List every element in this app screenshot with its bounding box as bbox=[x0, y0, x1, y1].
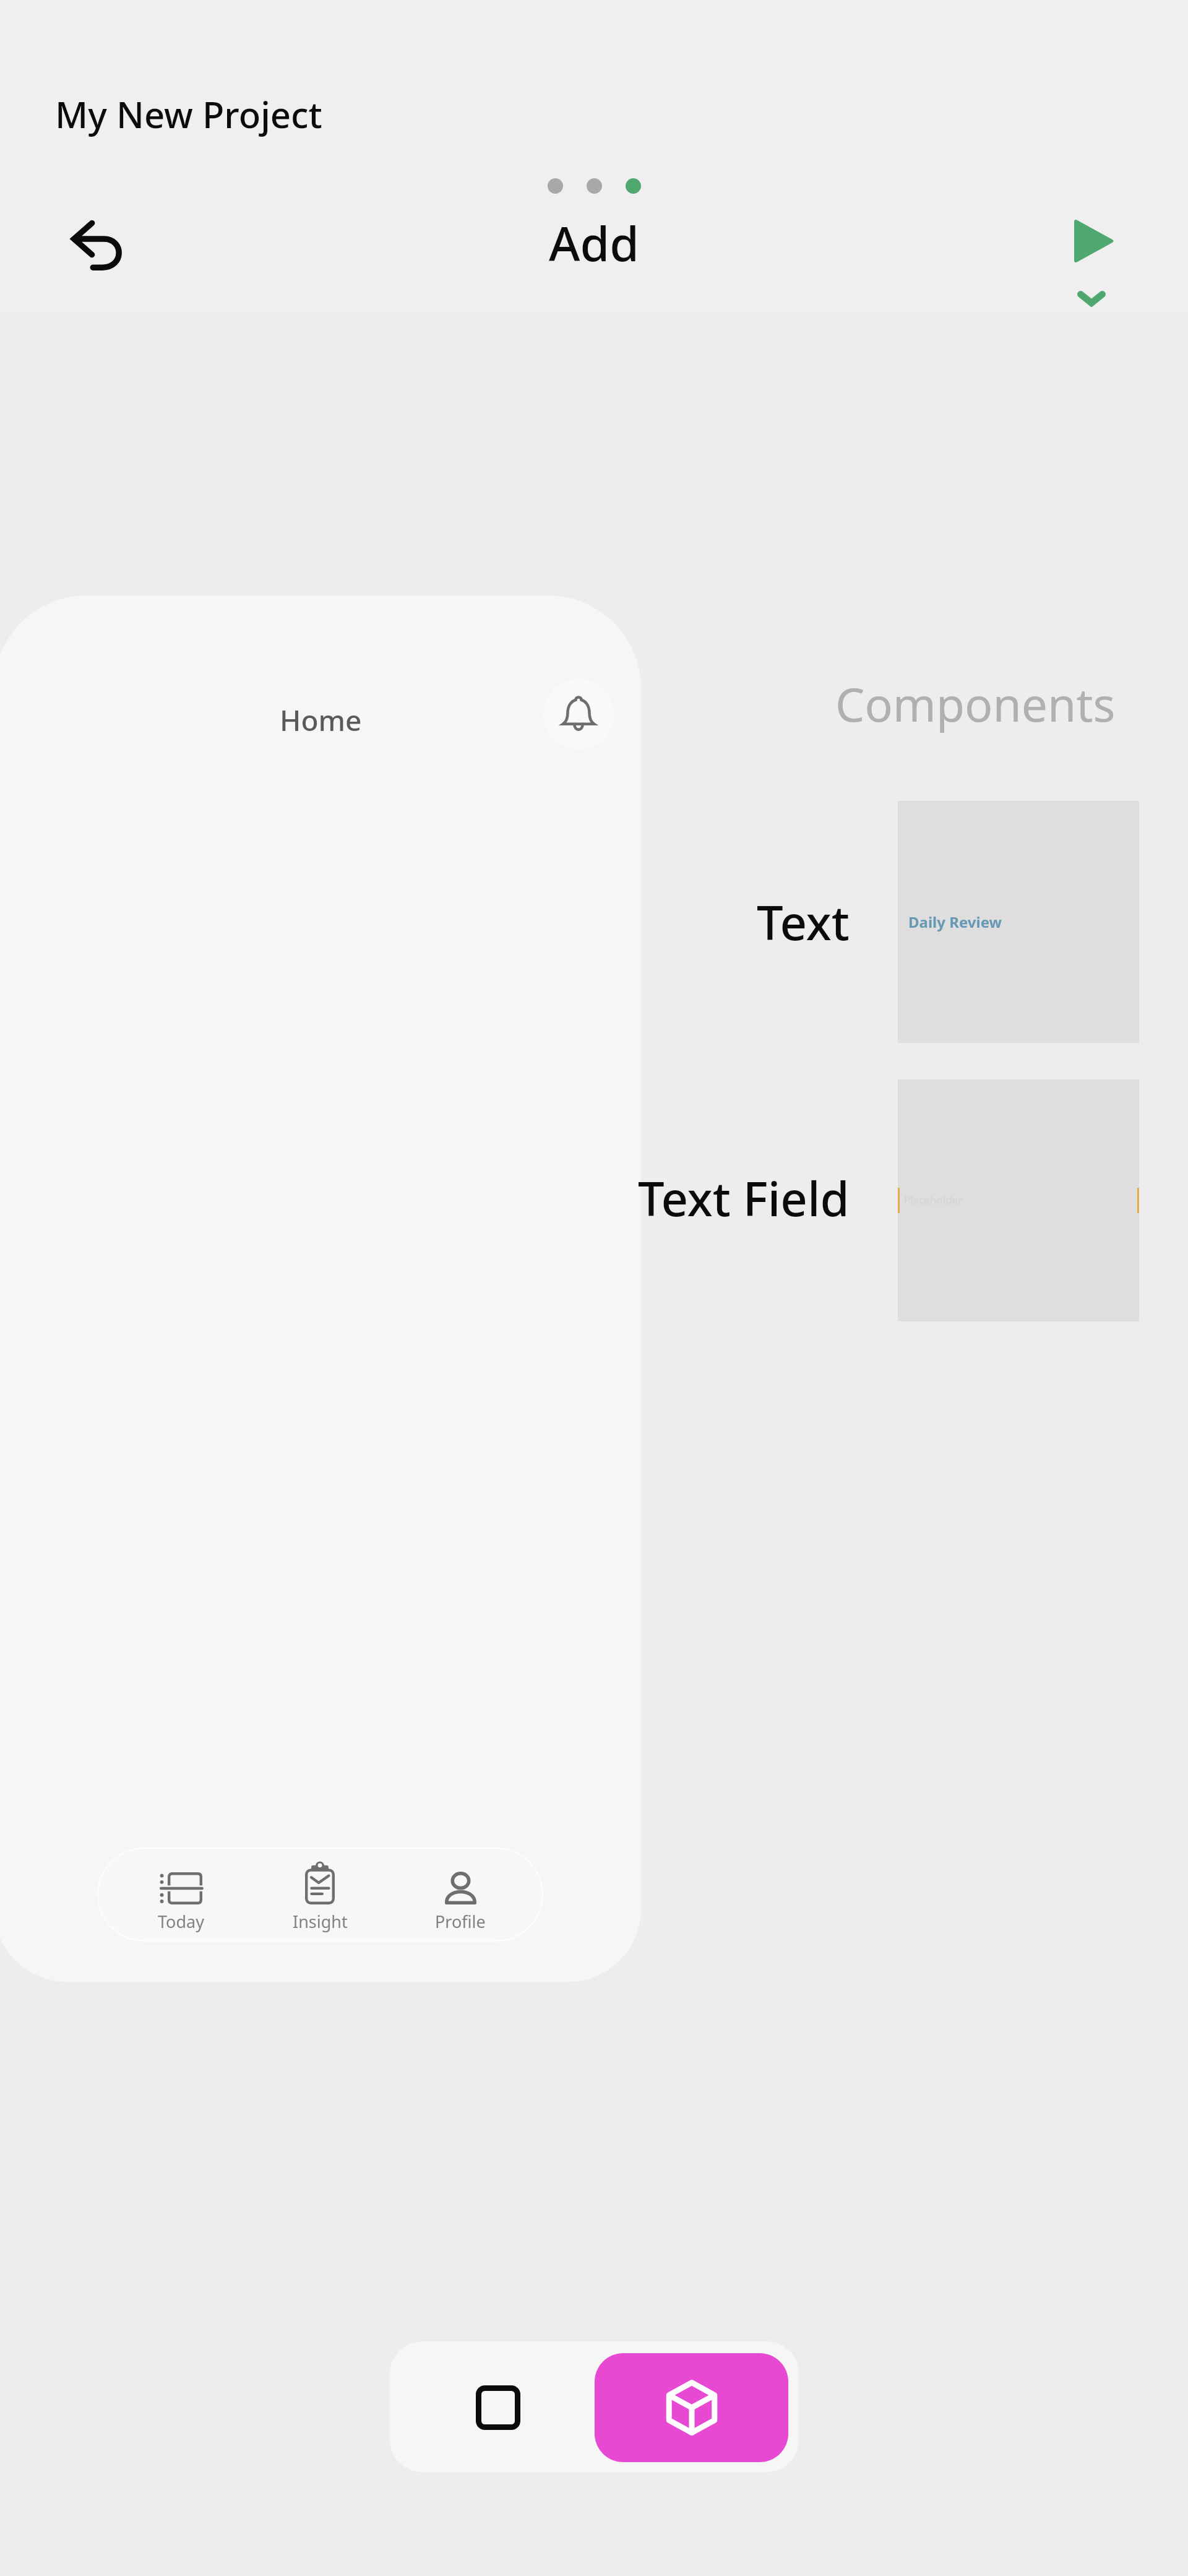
button[interactable]: Notifications bbox=[543, 679, 614, 750]
button[interactable]: Run bbox=[1062, 206, 1127, 276]
staticText: Profile bbox=[435, 1910, 486, 1933]
staticText: Today bbox=[158, 1910, 204, 1933]
button[interactable]: Undo bbox=[59, 208, 136, 285]
button[interactable]: Profile bbox=[411, 1848, 510, 1942]
staticText: Text Field bbox=[638, 1166, 850, 1230]
staticText: My New Project bbox=[55, 90, 322, 139]
button[interactable]: Today bbox=[131, 1848, 230, 1942]
button[interactable]: Frame bbox=[402, 2353, 595, 2462]
staticText: Daily Review bbox=[908, 912, 1002, 932]
button[interactable]: Placeholder bbox=[898, 1079, 1139, 1321]
staticText: Insight bbox=[293, 1910, 348, 1933]
button[interactable]: Expand bbox=[1059, 276, 1124, 321]
staticText: Placeholder bbox=[904, 1193, 963, 1207]
staticText: Add bbox=[549, 210, 639, 275]
staticText: Home bbox=[280, 701, 362, 740]
button[interactable]: Insight bbox=[270, 1848, 369, 1942]
button[interactable]: Daily Review bbox=[898, 801, 1139, 1043]
staticText: Text bbox=[757, 890, 850, 954]
staticText: Components bbox=[835, 672, 1116, 735]
button[interactable]: Components bbox=[595, 2353, 788, 2462]
